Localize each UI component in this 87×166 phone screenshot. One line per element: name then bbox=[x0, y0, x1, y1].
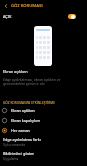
staticText: GÖZ KORUMASINI ETKİNLEŞTİRME bbox=[3, 101, 55, 105]
staticText: Bildirimleri göster bbox=[3, 151, 35, 156]
button[interactable]: Back bbox=[0, 0, 11, 11]
staticText: AÇIK bbox=[3, 14, 12, 19]
button[interactable]: Ekran kapalıyken bbox=[0, 115, 87, 125]
button[interactable]: Ekran açıkken bbox=[0, 105, 87, 115]
staticText: Ekran kapalıyken bbox=[11, 118, 41, 123]
staticText: Edge aydınlatma farkı bbox=[3, 137, 41, 142]
staticText: Ekran açıkken bbox=[11, 108, 35, 113]
button[interactable]: Her zaman bbox=[0, 125, 87, 135]
button[interactable]: Edge aydınlatma farkı bbox=[0, 135, 87, 149]
staticText: Edge aydınlatması, ekran açıkken ve gece… bbox=[3, 77, 83, 86]
staticText: Ekran açıkken bbox=[3, 69, 28, 74]
button[interactable]: AÇIK bbox=[0, 11, 87, 22]
staticText: GÖZ KORUMASI bbox=[11, 3, 43, 9]
staticText: Uygulama bbox=[3, 157, 19, 161]
staticText: Uyku sırasında bbox=[3, 143, 25, 147]
button[interactable]: Bildirimleri göster bbox=[0, 149, 87, 163]
staticText: Her zaman bbox=[11, 128, 30, 133]
